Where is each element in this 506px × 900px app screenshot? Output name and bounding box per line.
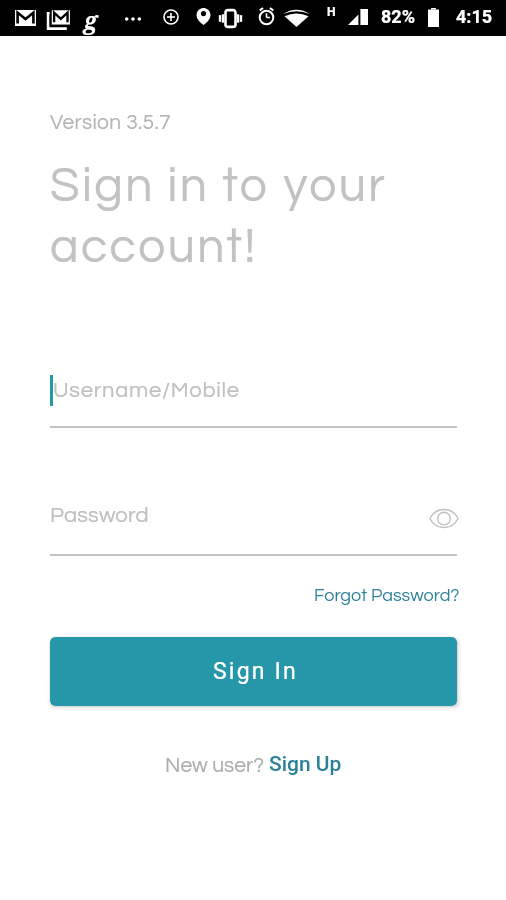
- button[interactable]: Sign In: [50, 637, 457, 706]
- staticText: 4:15: [456, 6, 493, 27]
- button[interactable]: Sign Up: [269, 752, 342, 777]
- button[interactable]: Show password: [424, 498, 464, 538]
- staticText: Sign Up: [269, 752, 342, 777]
- staticText: Sign In: [213, 658, 298, 685]
- staticText: 82%: [381, 6, 415, 27]
- staticText: New user?: [165, 755, 269, 777]
- staticText: Username/Mobile: [53, 379, 240, 402]
- staticText: Forgot Password?: [314, 586, 460, 605]
- staticText: H: [327, 5, 336, 19]
- staticText: Version 3.5.7: [50, 112, 171, 134]
- staticText: g: [84, 4, 98, 35]
- button[interactable]: Forgot Password?: [314, 586, 460, 605]
- staticText: Sign in to your account!: [50, 162, 460, 272]
- staticText: Password: [50, 504, 149, 527]
